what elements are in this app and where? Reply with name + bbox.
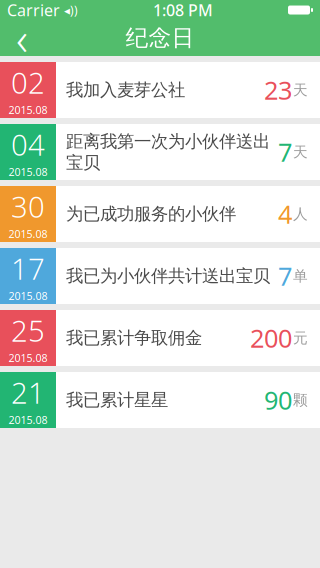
staticText: Carrier: [7, 0, 60, 21]
staticText: 200: [250, 321, 292, 355]
staticText: 2015.08: [8, 351, 47, 365]
staticText: 7: [278, 135, 292, 169]
staticText: 为已成功服务的小伙伴: [66, 203, 236, 225]
staticText: 单: [293, 267, 308, 285]
staticText: 2015.08: [8, 103, 47, 117]
staticText: 25: [11, 311, 45, 350]
staticText: 元: [293, 329, 308, 347]
staticText: 纪念日: [125, 24, 194, 52]
staticText: 17: [11, 249, 45, 288]
button[interactable]: 02: [0, 62, 320, 118]
button[interactable]: 21: [0, 372, 320, 428]
staticText: 我已为小伙伴共计送出宝贝: [66, 265, 270, 287]
staticText: 4: [278, 197, 292, 231]
staticText: 2015.08: [8, 413, 47, 427]
staticText: 颗: [293, 391, 308, 409]
staticText: 1:08 PM: [153, 0, 213, 21]
staticText: 90: [264, 383, 292, 417]
staticText: ‹: [16, 8, 28, 68]
button[interactable]: 04: [0, 124, 320, 180]
staticText: 人: [293, 205, 308, 223]
button[interactable]: 17: [0, 248, 320, 304]
button[interactable]: 25: [0, 310, 320, 366]
staticText: 天: [293, 143, 308, 161]
staticText: 2015.08: [8, 165, 47, 179]
staticText: 21: [11, 373, 45, 412]
staticText: 我已累计星星: [66, 389, 168, 411]
staticText: 02: [11, 63, 45, 102]
staticText: 我加入麦芽公社: [66, 79, 185, 101]
staticText: 30: [11, 187, 45, 226]
staticText: 2015.08: [8, 227, 47, 241]
staticText: 距离我第一次为小伙伴送出宝贝: [66, 131, 270, 173]
staticText: ◂)): [64, 2, 78, 18]
staticText: 04: [11, 125, 45, 164]
staticText: 天: [293, 81, 308, 99]
staticText: 我已累计争取佣金: [66, 327, 202, 349]
staticText: 23: [264, 73, 292, 107]
button[interactable]: 30: [0, 186, 320, 242]
staticText: 2015.08: [8, 289, 47, 303]
staticText: 7: [278, 259, 292, 293]
button[interactable]: Back: [0, 20, 44, 56]
